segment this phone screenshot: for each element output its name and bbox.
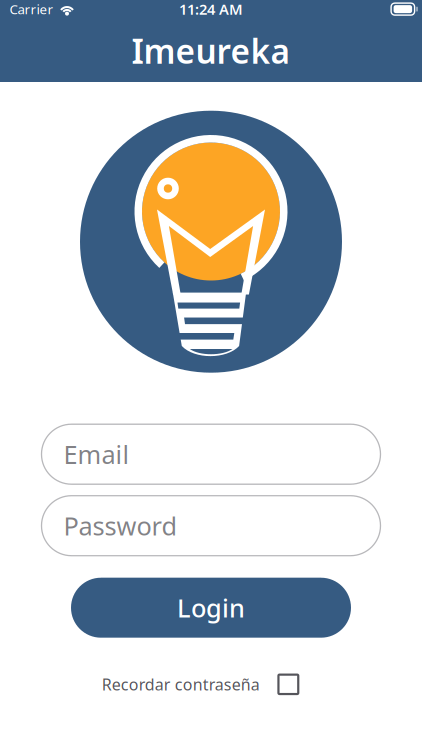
staticText: Login (177, 591, 245, 624)
staticText: Email (63, 437, 129, 471)
staticText: Imeureka (131, 29, 290, 73)
staticText: Recordar contraseña (102, 674, 260, 695)
button[interactable]: Login (71, 578, 351, 638)
button[interactable]: Recordar contraseña (102, 670, 320, 699)
staticText: 11:24 AM (179, 0, 243, 19)
staticText: Carrier (9, 0, 53, 18)
staticText: Password (63, 509, 177, 542)
